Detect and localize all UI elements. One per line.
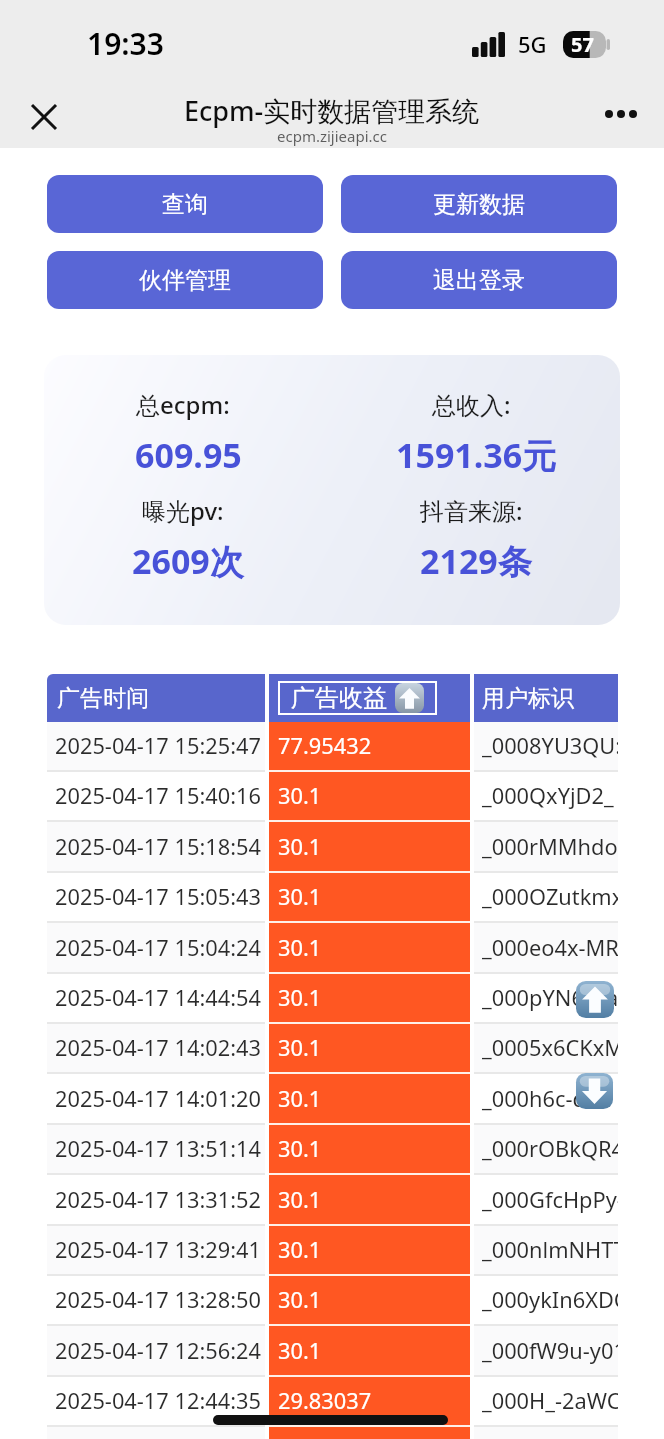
staticText: 曝光pv: [142,494,234,527]
staticText: 2025-04-17 14:44:54 [55,983,261,1013]
button[interactable]: Scroll up [576,981,614,1018]
staticText: 广告时间 [57,684,149,713]
staticText: 5G [518,29,547,59]
staticText: 总收入: [432,388,521,421]
staticText: 退出登录 [433,266,525,295]
staticText: 30.1 [278,1084,322,1114]
staticText: _000h6c-dne [482,1084,612,1114]
staticText: _000rOBkQR4 [482,1134,618,1164]
staticText: 30.1 [278,1134,322,1164]
staticText: 29.83037 [278,1386,372,1416]
staticText: 30.1 [278,781,322,811]
staticText: _000fW9u-y01 [482,1336,618,1366]
staticText: _0005x6CKxM [482,1033,618,1063]
staticText: 77.95432 [278,731,372,761]
staticText: _000nlmNHTT [482,1235,618,1265]
staticText: 2025-04-17 14:01:20 [55,1084,261,1114]
staticText: 查询 [162,190,208,219]
staticText: 2025-04-17 15:25:47 [55,731,261,761]
button[interactable]: Close [20,93,68,141]
staticText: 2025-04-17 14:02:43 [55,1033,261,1063]
staticText: 30.1 [278,832,322,862]
button[interactable]: Scroll down [576,1073,613,1109]
staticText: _000H_-2aWC [482,1386,618,1416]
staticText: 更新数据 [433,190,525,219]
staticText: 19:33 [87,23,164,64]
staticText: 广告收益 [291,683,387,713]
staticText: 2025-04-17 12:44:35 [55,1386,261,1416]
staticText: _0008YU3QU: [482,731,618,761]
staticText: 2129条 [420,538,532,584]
staticText: 2025-04-17 15:18:54 [55,832,261,862]
staticText: 30.1 [278,1033,322,1063]
button[interactable]: 退出登录 [341,251,617,309]
staticText: 总ecpm: [136,388,240,421]
staticText: _000OZutkmx [482,882,618,912]
button[interactable]: More options [597,90,645,138]
staticText: 抖音来源: [420,494,533,527]
staticText: 2025-04-17 13:51:14 [55,1134,261,1164]
staticText: 57 [571,31,594,58]
button[interactable]: 更新数据 [341,175,617,233]
staticText: 30.1 [278,1235,322,1265]
staticText: 30.1 [278,1285,322,1315]
staticText: 2025-04-17 13:29:41 [55,1235,261,1265]
staticText: Ecpm-实时数据管理系统 [184,92,480,129]
staticText: 30.1 [278,1336,322,1366]
staticText: 30.1 [278,983,322,1013]
staticText: 30.1 [278,933,322,963]
staticText: ecpm.zijieapi.cc [277,126,387,146]
staticText: 伙伴管理 [139,266,231,295]
staticText: 2609次 [132,538,244,584]
staticText: _000pYN6vva [482,983,618,1013]
staticText: _000rMMhdo- [482,832,618,862]
staticText: 2025-04-17 13:28:50 [55,1285,261,1315]
staticText: 2025-04-17 12:56:24 [55,1336,261,1366]
staticText: 609.95 [135,432,242,478]
staticText: 用户标识 [482,684,574,713]
staticText: 2025-04-17 13:31:52 [55,1185,261,1215]
staticText: 30.1 [278,882,322,912]
staticText: 30.1 [278,1185,322,1215]
staticText: 2025-04-17 15:05:43 [55,882,261,912]
staticText: _000ykIn6XDC [482,1285,618,1315]
staticText: 1591.36元 [396,432,557,478]
button[interactable]: 查询 [47,175,323,233]
button[interactable]: 伙伴管理 [47,251,323,309]
staticText: 2025-04-17 15:40:16 [55,781,261,811]
staticText: _000QxYjD2_ [482,781,614,811]
staticText: _000eo4x-MR [482,933,618,963]
staticText: _000GfcHpPy- [482,1185,618,1215]
staticText: 2025-04-17 15:04:24 [55,933,261,963]
